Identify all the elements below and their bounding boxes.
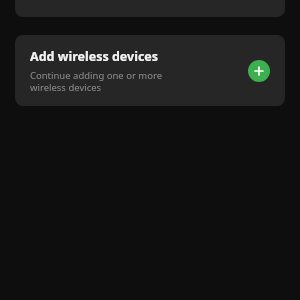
button[interactable]: Add wireless devices bbox=[15, 35, 285, 106]
button[interactable]: Add wireless device bbox=[248, 60, 270, 82]
staticText: Add wireless devices bbox=[30, 48, 159, 65]
staticText: Continue adding one or more wireless dev… bbox=[30, 69, 163, 94]
